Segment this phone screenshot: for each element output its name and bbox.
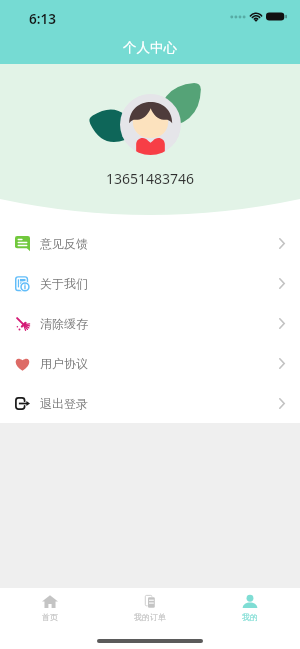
staticText: 我的: [242, 612, 258, 622]
staticText: 清除缓存: [40, 316, 88, 331]
staticText: 意见反馈: [40, 236, 88, 251]
button[interactable]: 清除缓存: [0, 303, 300, 343]
other: 我的订单: [145, 595, 155, 608]
other: 首页: [42, 595, 58, 608]
button[interactable]: 用户协议: [0, 343, 300, 383]
staticText: 关于我们: [40, 276, 88, 291]
button[interactable]: 退出登录: [0, 383, 300, 423]
staticText: 6:13: [29, 10, 56, 28]
staticText: 个人中心: [123, 39, 177, 56]
button[interactable]: 意见反馈: [0, 223, 300, 263]
button[interactable]: 关于我们: [0, 263, 300, 303]
other: 我的: [242, 595, 258, 608]
staticText: 我的订单: [134, 612, 166, 622]
button[interactable]: 首页: [0, 588, 100, 622]
staticText: 退出登录: [40, 396, 88, 411]
staticText: 13651483746: [106, 169, 195, 188]
staticText: 用户协议: [40, 356, 88, 371]
button[interactable]: 我的: [200, 588, 300, 622]
button[interactable]: 我的订单: [100, 588, 200, 622]
staticText: 首页: [42, 612, 58, 622]
